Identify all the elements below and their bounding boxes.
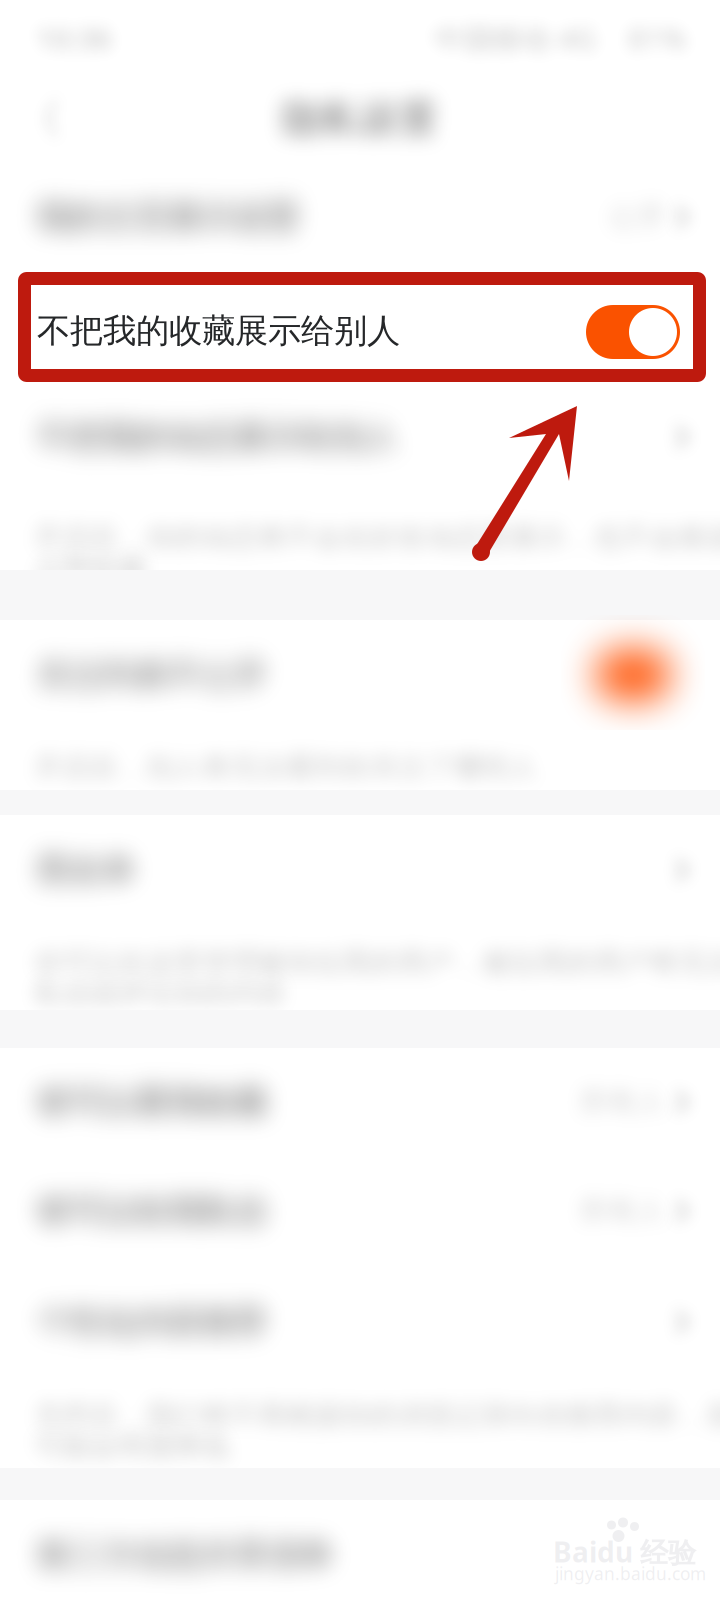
button[interactable]: 第三方信息共享清单 — [0, 1500, 720, 1600]
button[interactable]: 关注列表不公开 — [0, 620, 720, 730]
button[interactable]: 我的主页展示设置 — [0, 162, 720, 272]
staticText: 不把我的收藏展示给别人 — [37, 310, 400, 351]
button[interactable]: 不把我的动态展示给别人 — [0, 382, 720, 492]
button[interactable]: 谁可以给我私信 — [0, 1156, 720, 1266]
staticText: Baidu 经验 — [553, 1533, 696, 1570]
button[interactable]: 黑名单 — [0, 815, 720, 925]
staticText: jingyan.baidu.com — [555, 1562, 706, 1585]
button[interactable]: 个性化内容推荐 — [0, 1266, 720, 1378]
button[interactable]: 不把我的收藏展示给别人 — [0, 272, 720, 382]
button[interactable]: 谁可以看我收藏 — [0, 1048, 720, 1156]
